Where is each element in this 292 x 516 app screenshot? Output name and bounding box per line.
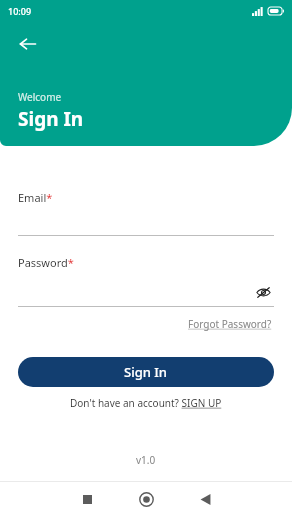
staticText: Sign In — [18, 106, 84, 132]
staticText: Don't have an account? SIGN UP — [70, 396, 222, 410]
staticText: Forgot Password? — [188, 317, 272, 331]
button[interactable]: Recents — [75, 487, 99, 511]
staticText: Welcome — [18, 90, 62, 104]
button[interactable]: Toggle password visibility — [252, 282, 274, 302]
button[interactable]: Forgot Password? — [186, 315, 274, 333]
staticText: Email* — [18, 190, 53, 205]
button[interactable]: Back — [12, 28, 44, 60]
button[interactable]: Don't have an account? SIGN UP — [18, 396, 274, 410]
button[interactable]: Sign In — [18, 357, 274, 387]
staticText: Sign In — [124, 363, 168, 381]
staticText: Password* — [18, 255, 74, 270]
staticText: 10:09 — [8, 5, 32, 17]
button[interactable]: Back — [193, 487, 217, 511]
staticText: v1.0 — [136, 453, 156, 467]
button[interactable]: Home — [134, 487, 158, 511]
